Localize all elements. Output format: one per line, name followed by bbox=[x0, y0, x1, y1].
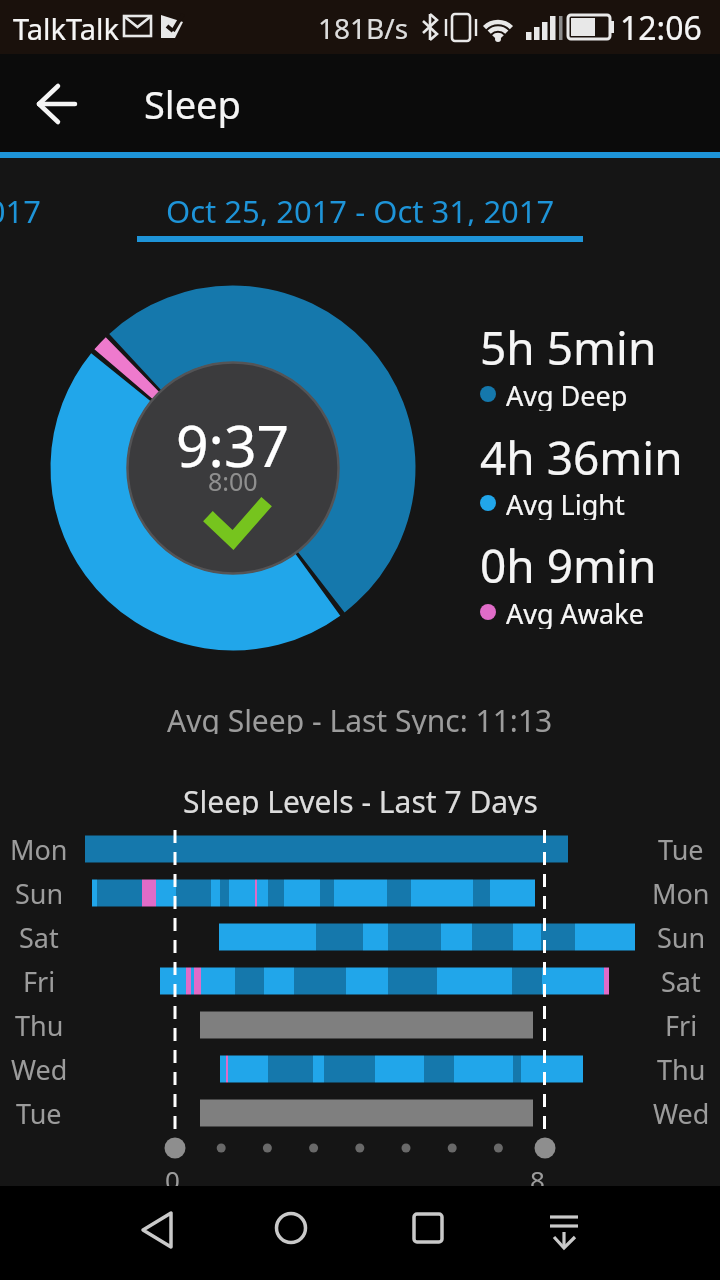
staticText: TalkTalk bbox=[13, 9, 120, 48]
staticText: Wed bbox=[653, 1095, 710, 1131]
button[interactable] bbox=[388, 1186, 468, 1280]
staticText: Avg Light bbox=[506, 486, 625, 520]
staticText: Sleep bbox=[144, 78, 241, 130]
staticText: 5h 5min bbox=[480, 316, 657, 374]
staticText: Avg Awake bbox=[506, 595, 644, 629]
staticText: 8 bbox=[530, 1162, 545, 1194]
staticText: 4h 36min bbox=[480, 426, 683, 484]
staticText: Sat bbox=[661, 963, 701, 999]
staticText: Thu bbox=[15, 1007, 64, 1043]
staticText: Fri bbox=[23, 963, 56, 999]
staticText: Tue bbox=[658, 831, 704, 867]
staticText: 12:06 bbox=[620, 6, 702, 48]
button[interactable] bbox=[251, 1186, 331, 1280]
staticText: 8:00 bbox=[208, 464, 258, 494]
staticText: 0h 9min bbox=[480, 534, 657, 592]
staticText: 0 bbox=[165, 1162, 180, 1194]
button[interactable] bbox=[522, 1186, 602, 1280]
button[interactable] bbox=[117, 1186, 197, 1280]
staticText: Thu bbox=[657, 1051, 706, 1087]
staticText: Sleep Levels - Last 7 Days bbox=[183, 781, 538, 815]
staticText: Sun bbox=[657, 919, 706, 955]
staticText: 2017 bbox=[0, 190, 41, 226]
staticText: Sun bbox=[15, 875, 64, 911]
staticText: Sat bbox=[19, 919, 59, 955]
staticText: Tue bbox=[16, 1095, 62, 1131]
staticText: 9:37 bbox=[176, 406, 290, 468]
button[interactable] bbox=[20, 74, 90, 134]
staticText: Fri bbox=[665, 1007, 698, 1043]
staticText: Avg Deep bbox=[506, 377, 628, 411]
staticText: Mon bbox=[10, 831, 68, 867]
staticText: 181B/s bbox=[318, 9, 409, 47]
staticText: Mon bbox=[652, 875, 710, 911]
staticText: Wed bbox=[11, 1051, 68, 1087]
staticText: Oct 25, 2017 - Oct 31, 2017 bbox=[166, 190, 555, 226]
button[interactable] bbox=[0, 158, 720, 246]
staticText: Avg Sleep - Last Sync: 11:13 bbox=[167, 700, 553, 734]
